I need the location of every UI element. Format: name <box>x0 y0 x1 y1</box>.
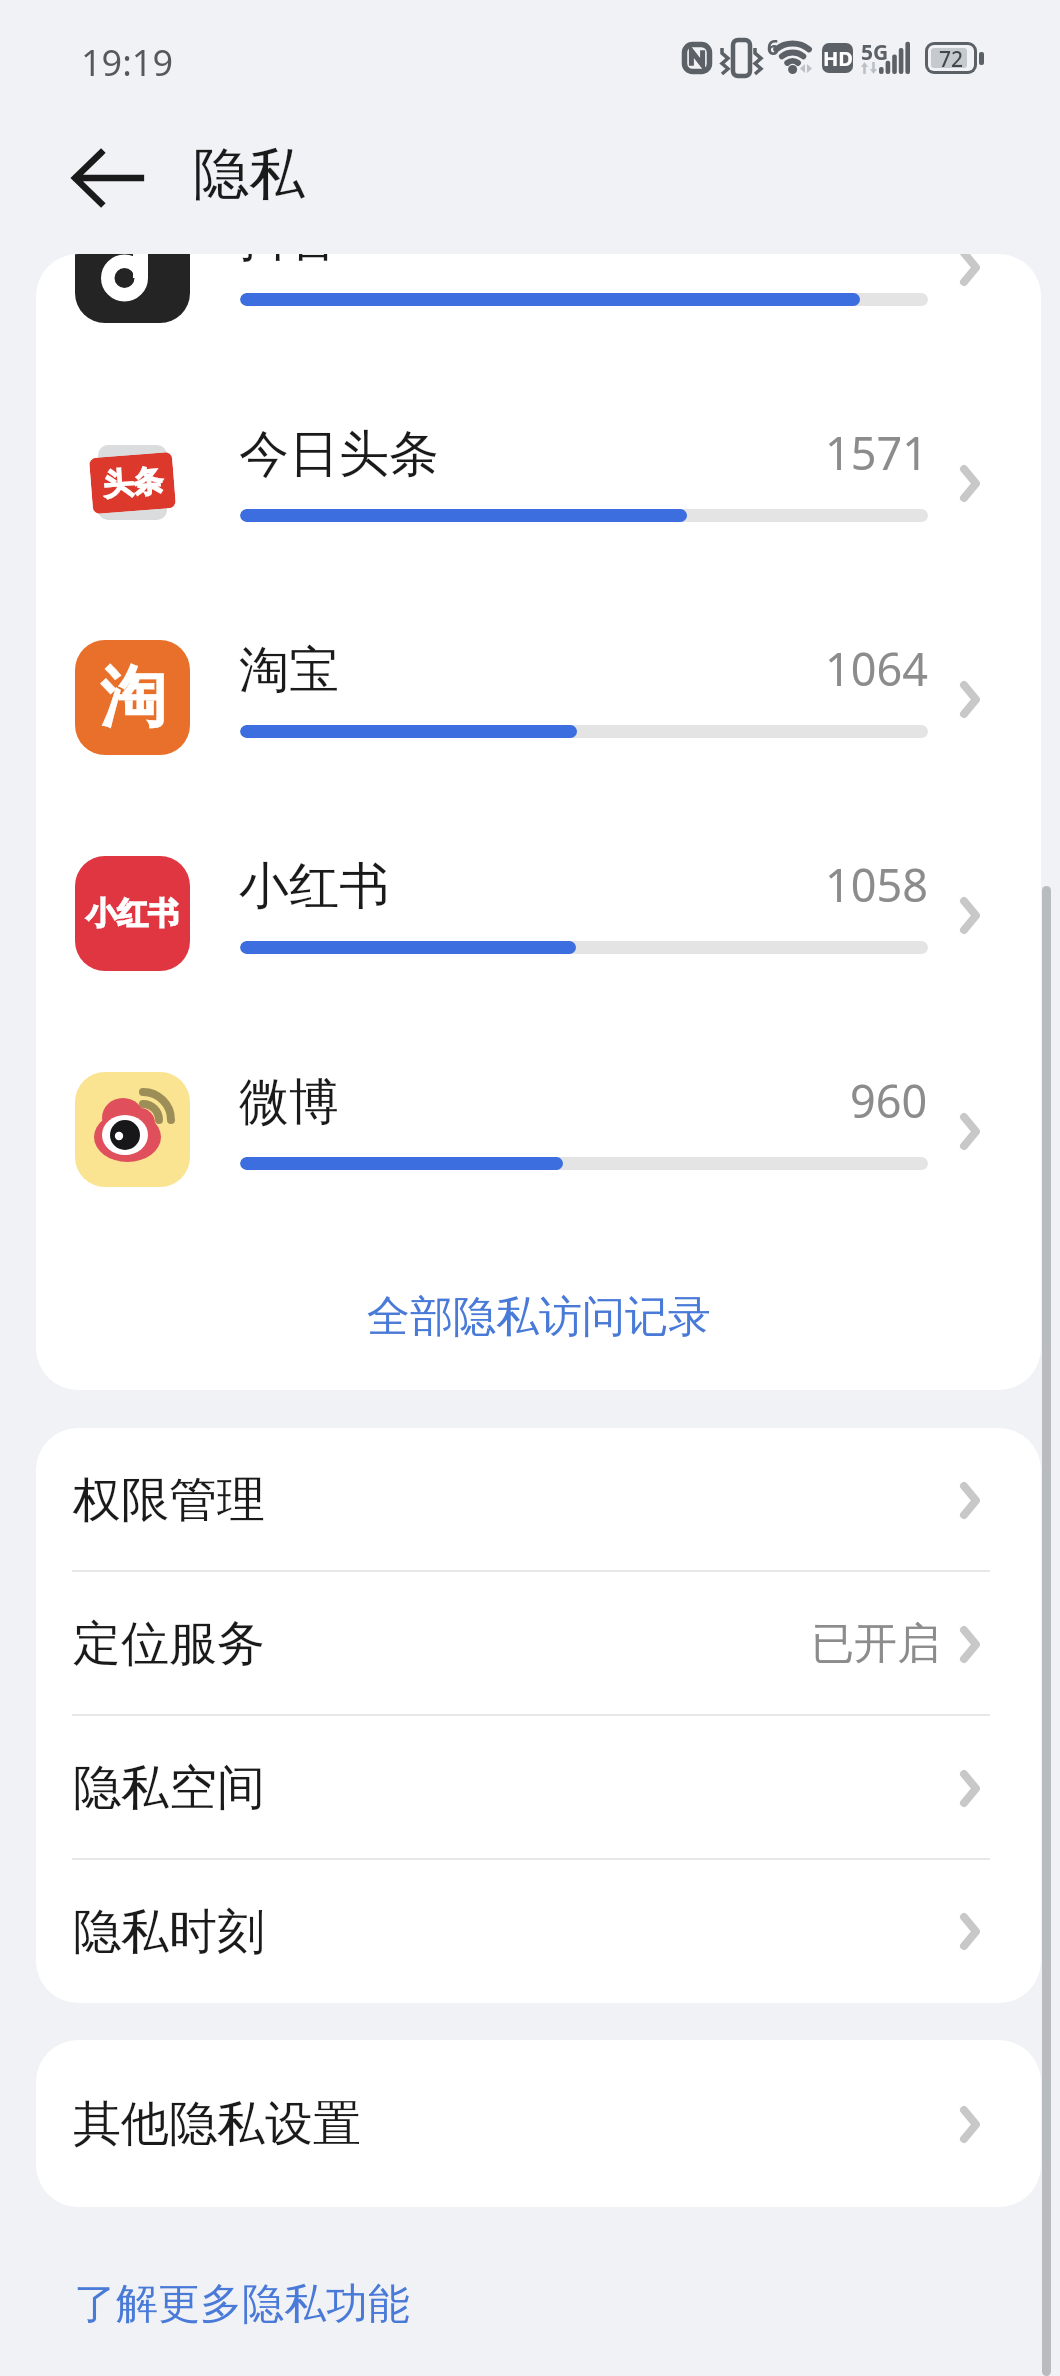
staticText: 1064 <box>825 638 928 699</box>
staticText: 淘 <box>100 656 166 739</box>
staticText: 72 <box>939 45 964 71</box>
staticText: 头条 <box>102 462 164 504</box>
staticText: HD <box>823 45 853 72</box>
button[interactable]: Back <box>60 130 156 226</box>
button[interactable]: 微博 details <box>940 1101 1000 1161</box>
button[interactable]: 淘宝 details <box>940 669 1000 729</box>
staticText: 960 <box>850 1070 928 1131</box>
button[interactable]: 小红书 details <box>940 885 1000 945</box>
staticText: 小红书 <box>239 855 389 918</box>
staticText: 隐私空间 <box>73 1758 265 1818</box>
staticText: 今日头条 <box>239 423 439 486</box>
button[interactable]: 权限管理 <box>36 1428 1041 1572</box>
button[interactable]: 抖音 details <box>940 254 1000 297</box>
staticText: 已开启 <box>811 1617 940 1671</box>
button[interactable]: 了解更多隐私功能 <box>74 2259 410 2349</box>
staticText: 淘宝 <box>239 639 339 702</box>
staticText: 其他隐私设置 <box>73 2094 361 2154</box>
button[interactable]: 定位服务 <box>36 1572 1041 1716</box>
button[interactable]: 隐私时刻 <box>36 1860 1041 2003</box>
staticText: 小红书 <box>86 894 179 933</box>
staticText: 微博 <box>239 1071 339 1134</box>
button[interactable]: 其他隐私设置 <box>36 2052 1041 2196</box>
staticText: 了解更多隐私功能 <box>74 2278 410 2331</box>
staticText: 6 <box>767 33 780 62</box>
staticText: 隐私 <box>193 139 305 210</box>
staticText: 1058 <box>825 854 928 915</box>
staticText: 5G <box>861 38 889 67</box>
button[interactable]: 今日头条 details <box>940 453 1000 513</box>
button[interactable]: 隐私空间 <box>36 1716 1041 1860</box>
staticText: 隐私时刻 <box>73 1902 265 1962</box>
staticText: 19:19 <box>81 38 174 87</box>
staticText: 抖音 <box>239 254 339 270</box>
staticText: 定位服务 <box>73 1614 265 1674</box>
button[interactable]: 全部隐私访问记录 <box>36 1236 1041 1390</box>
staticText: 1571 <box>825 422 928 483</box>
staticText: 权限管理 <box>73 1470 265 1530</box>
staticText: 全部隐私访问记录 <box>367 1290 711 1344</box>
